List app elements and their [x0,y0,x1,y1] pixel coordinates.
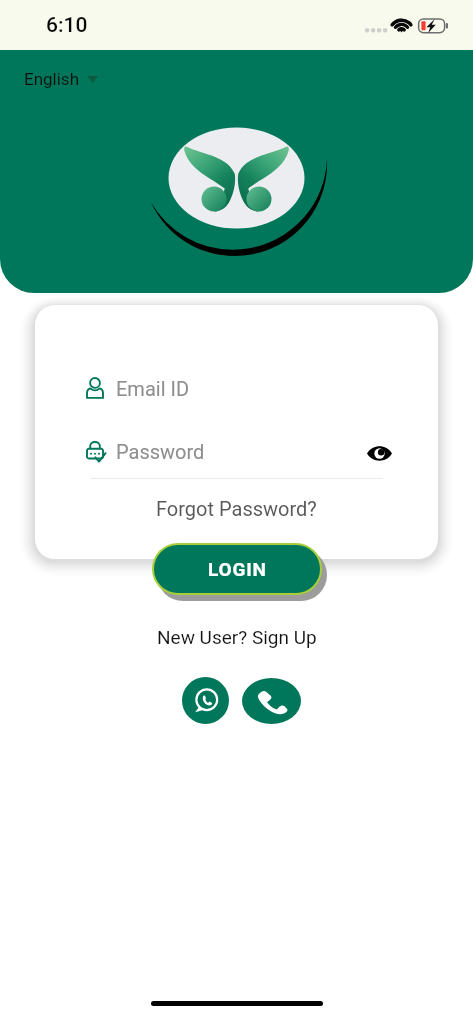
button[interactable]: Show password [363,435,395,467]
button[interactable]: New User? Sign Up [157,626,317,648]
button[interactable]: LOGIN [154,545,320,593]
staticText: LOGIN [208,558,267,580]
button[interactable]: English [20,65,102,93]
button[interactable]: Call [242,678,301,724]
staticText: Password [116,440,205,463]
staticText: 6:10 [46,13,88,38]
staticText: English [24,69,80,89]
button[interactable]: WhatsApp [182,677,229,724]
button[interactable]: Forgot Password? [156,497,317,520]
staticText: Email ID [116,377,190,400]
